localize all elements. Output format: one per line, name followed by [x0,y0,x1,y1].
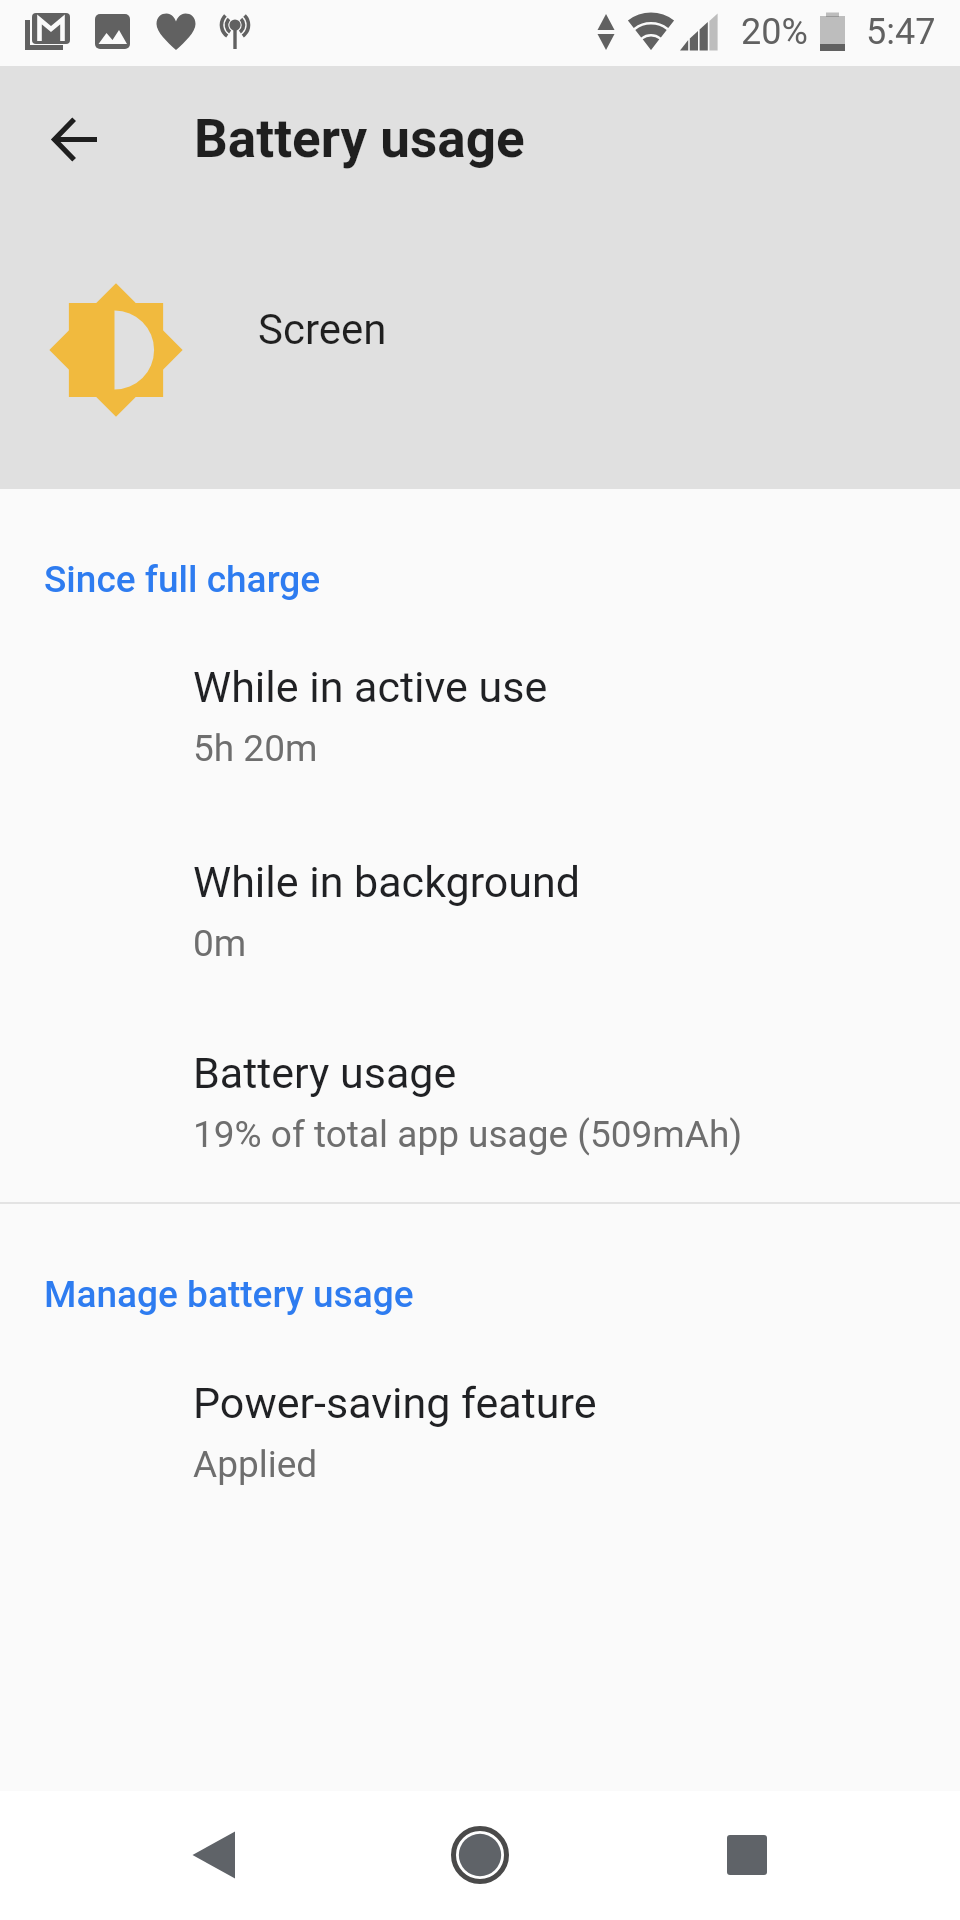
staticText: Battery usage [193,1048,457,1098]
staticText: Battery usage [194,108,525,170]
staticText: While in background [193,857,581,907]
staticText: Since full charge [44,558,321,601]
button[interactable]: Power-saving feature [0,1378,960,1500]
staticText: Manage battery usage [44,1273,414,1316]
staticText: 0m [193,922,247,965]
button[interactable]: Back [150,1791,278,1919]
staticText: Power-saving feature [193,1378,597,1428]
staticText: While in active use [193,662,548,712]
button[interactable]: Home [416,1791,544,1919]
staticText: 5h 20m [193,727,318,770]
staticText: 20% [741,11,808,53]
staticText: 19% of total app usage (509mAh) [193,1113,743,1156]
button[interactable]: Battery usage [0,1048,960,1170]
button[interactable]: While in background [0,857,960,979]
staticText: 5:47 [866,11,936,53]
staticText: Applied [193,1443,318,1486]
staticText: Screen [258,305,387,354]
button[interactable]: Recent apps [683,1791,811,1919]
button[interactable]: Navigate up [31,95,119,183]
button[interactable]: While in active use [0,662,960,784]
